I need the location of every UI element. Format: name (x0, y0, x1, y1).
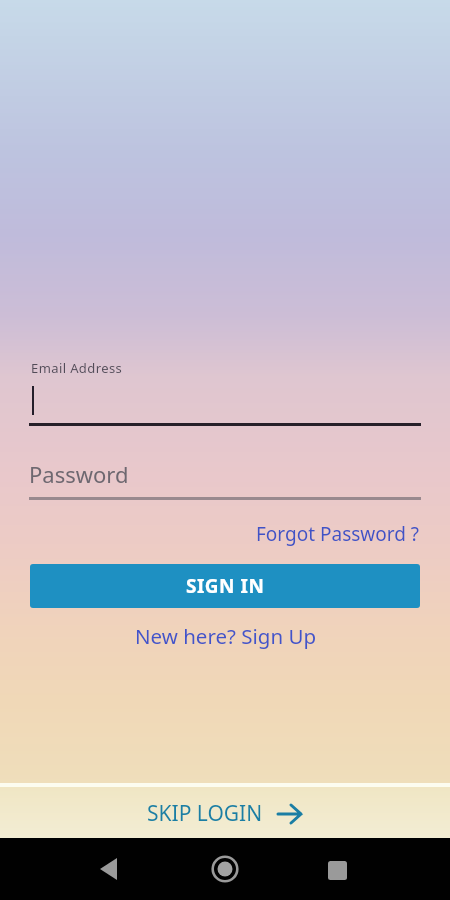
button[interactable] (328, 861, 347, 880)
button[interactable]: Forgot Password ? (256, 521, 420, 547)
staticText: Password (29, 459, 129, 489)
staticText: Email Address (31, 359, 123, 377)
staticText: Forgot Password ? (256, 521, 420, 547)
staticText: New here? Sign Up (135, 622, 316, 650)
button[interactable]: SIGN IN (30, 564, 420, 608)
button[interactable]: SKIP LOGIN (0, 787, 450, 839)
button[interactable] (29, 458, 421, 498)
button[interactable] (211, 855, 239, 883)
button[interactable] (29, 380, 421, 425)
button[interactable]: New here? Sign Up (135, 622, 316, 650)
staticText: SIGN IN (186, 573, 265, 599)
button[interactable] (95, 856, 123, 882)
staticText: SKIP LOGIN (147, 799, 263, 828)
